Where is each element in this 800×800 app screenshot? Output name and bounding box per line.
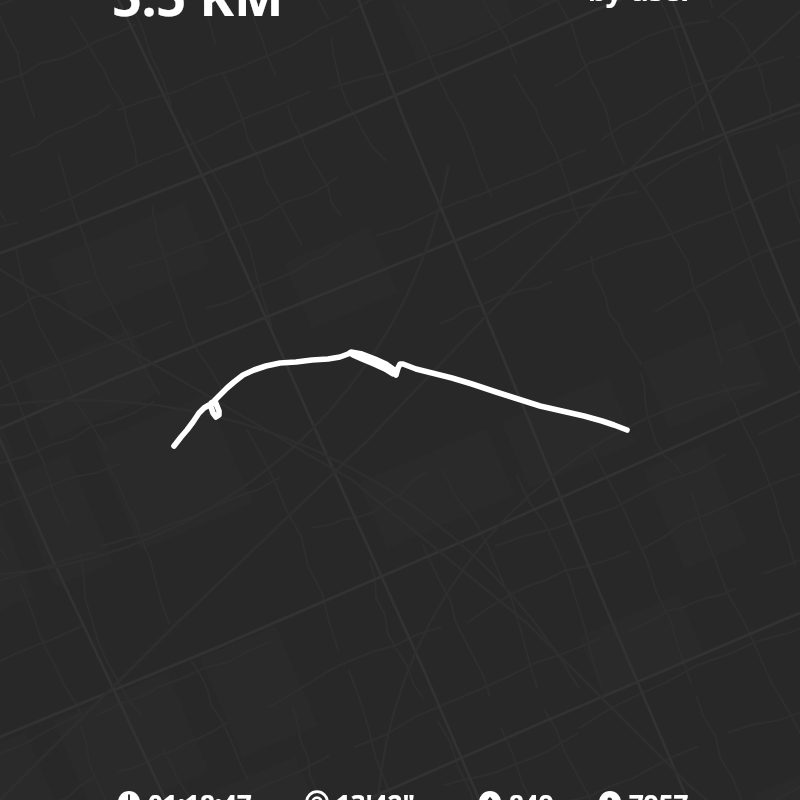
staticText: by user: [588, 0, 694, 9]
button[interactable]: Average pace: [306, 784, 415, 800]
button[interactable]: Duration: [118, 784, 252, 800]
staticText: 5.5 KM: [112, 0, 284, 31]
button[interactable]: 5.5 KM: [112, 0, 284, 31]
staticText: 01:18:47: [148, 786, 252, 800]
staticText: 7957: [629, 786, 689, 800]
button[interactable]: Steps: [599, 784, 689, 800]
staticText: 13'42": [336, 786, 415, 800]
button[interactable]: by user: [588, 0, 694, 9]
button[interactable]: Calories: [479, 784, 554, 800]
staticText: 849: [509, 786, 554, 800]
